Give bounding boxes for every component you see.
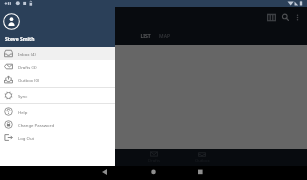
button[interactable]: Drafts <box>130 151 178 164</box>
button[interactable]: Inbox (4) <box>0 47 115 60</box>
staticText: Drafts (3) <box>18 64 37 70</box>
button[interactable]: Sync <box>0 89 115 102</box>
button[interactable]: Drafts (3) <box>0 60 115 73</box>
button[interactable]: Log Out <box>0 131 115 144</box>
staticText: Drafts <box>148 158 161 164</box>
staticText: Sync <box>18 93 28 99</box>
staticText: MAP <box>159 33 170 40</box>
staticText: Inbox (4) <box>18 51 36 57</box>
button[interactable]: Outbox (0) <box>0 73 115 86</box>
button[interactable]: More options <box>291 11 303 23</box>
button[interactable]: Outbox <box>178 151 226 164</box>
button[interactable]: LIST <box>136 33 155 48</box>
button[interactable]: Search <box>279 11 291 23</box>
staticText: Outbox (0) <box>18 77 40 83</box>
staticText: Help <box>18 109 28 115</box>
staticText: Log Out <box>18 135 35 141</box>
staticText: LIST <box>140 33 151 40</box>
button[interactable]: MAP <box>155 33 174 48</box>
button[interactable]: Help <box>0 105 115 118</box>
button[interactable]: Change Password <box>0 118 115 131</box>
staticText: Steve Smith <box>5 36 35 43</box>
button[interactable]: View module <box>265 11 277 23</box>
staticText: Change Password <box>18 122 55 128</box>
staticText: Outbox <box>195 158 210 164</box>
